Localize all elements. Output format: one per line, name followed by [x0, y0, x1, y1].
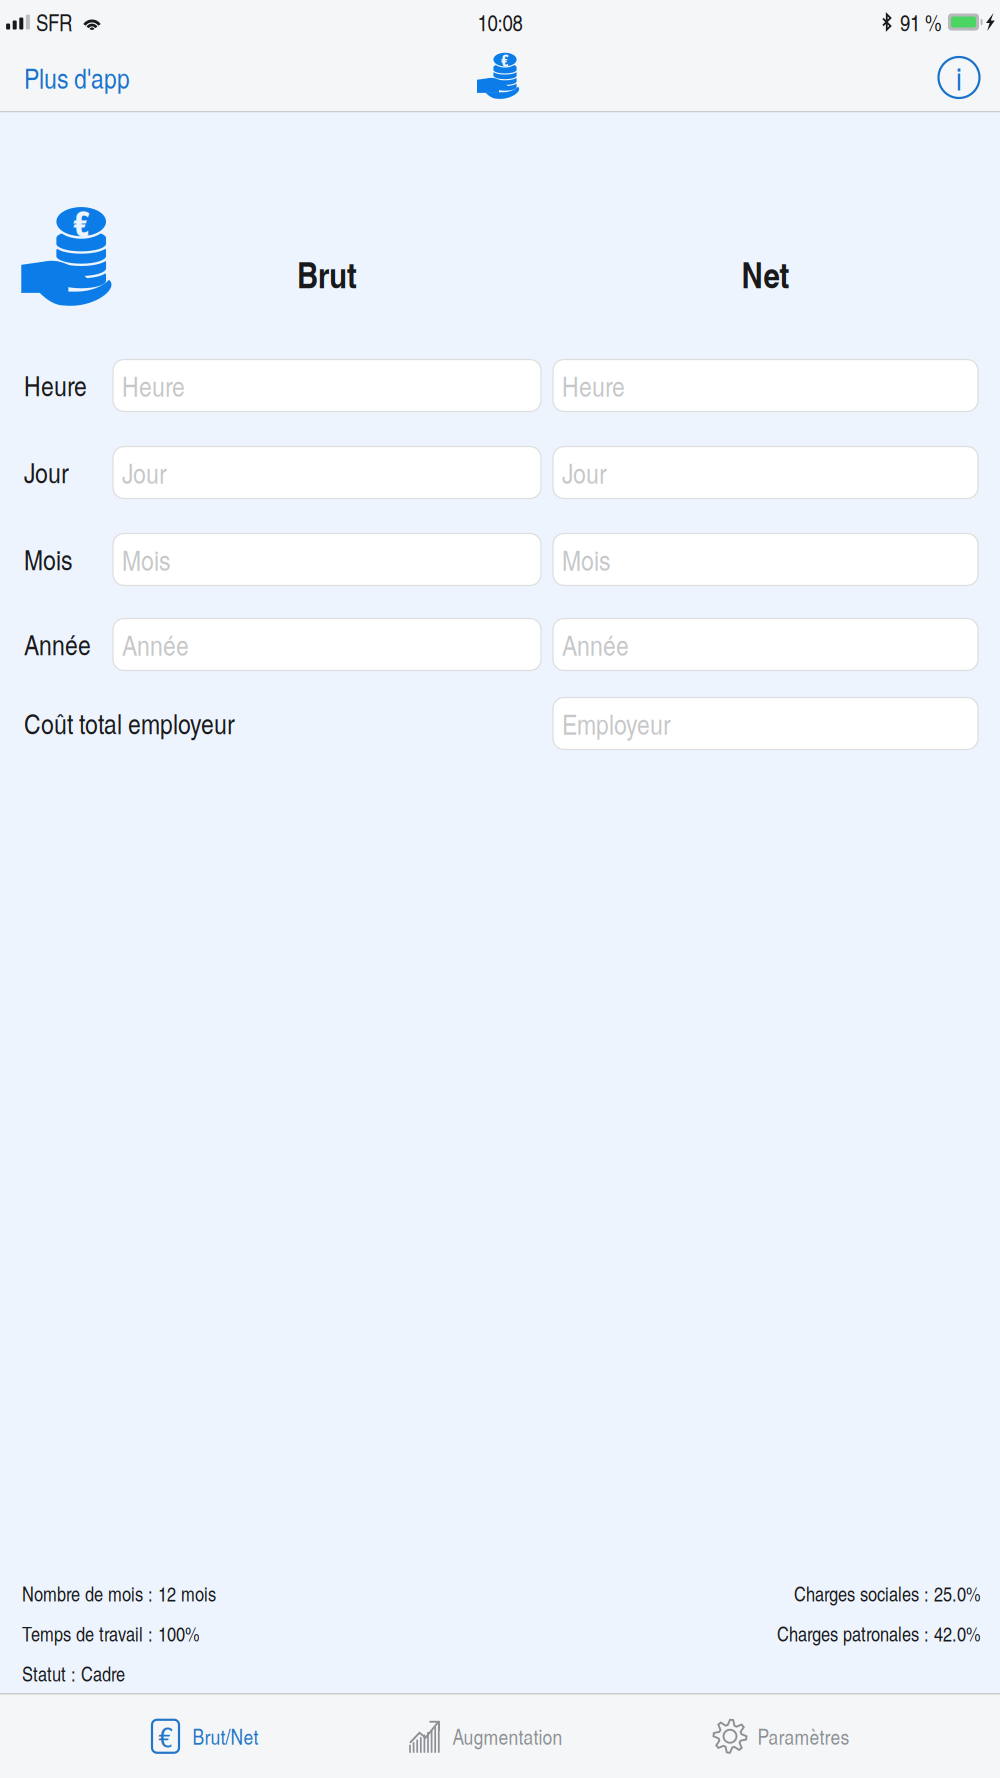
button[interactable]: Paramètres [694, 1694, 867, 1778]
staticText: Brut/Net [192, 1722, 258, 1751]
staticText: Temps de travail : 100% [22, 1620, 200, 1647]
staticText: Heure [122, 366, 185, 405]
staticText: € [73, 195, 89, 248]
staticText: € [158, 1717, 172, 1755]
staticText: 10:08 [477, 6, 522, 38]
staticText: Charges patronales : 42.0% [777, 1620, 981, 1647]
staticText: Paramètres [757, 1722, 849, 1751]
staticText: Employeur [562, 704, 671, 743]
staticText: Heure [24, 366, 87, 404]
staticText: Brut [297, 248, 357, 299]
staticText: Nombre de mois : 12 mois [22, 1580, 216, 1607]
button[interactable]: € [132, 1694, 276, 1778]
staticText: Charges sociales : 25.0% [794, 1580, 981, 1607]
staticText: Coût total employeur [24, 704, 235, 742]
staticText: Mois [122, 540, 170, 579]
staticText: Mois [562, 540, 610, 579]
staticText: 91 % [900, 6, 942, 38]
staticText: Année [24, 625, 91, 663]
staticText: Augmentation [452, 1722, 562, 1751]
staticText: Jour [122, 453, 167, 492]
staticText: Jour [24, 453, 69, 491]
staticText: € [501, 47, 509, 72]
staticText: Année [122, 625, 189, 664]
staticText: i [956, 56, 962, 99]
staticText: SFR [36, 6, 72, 38]
staticText: Heure [562, 366, 625, 405]
staticText: Statut : Cadre [22, 1660, 125, 1687]
staticText: Jour [562, 453, 607, 492]
staticText: Plus d'app [24, 58, 130, 97]
button[interactable]: Augmentation [390, 1694, 580, 1778]
button[interactable]: Plus d'app [0, 46, 146, 109]
staticText: Mois [24, 540, 72, 578]
button[interactable]: Informations [937, 55, 1000, 99]
staticText: Net [741, 248, 789, 299]
staticText: Année [562, 625, 629, 664]
